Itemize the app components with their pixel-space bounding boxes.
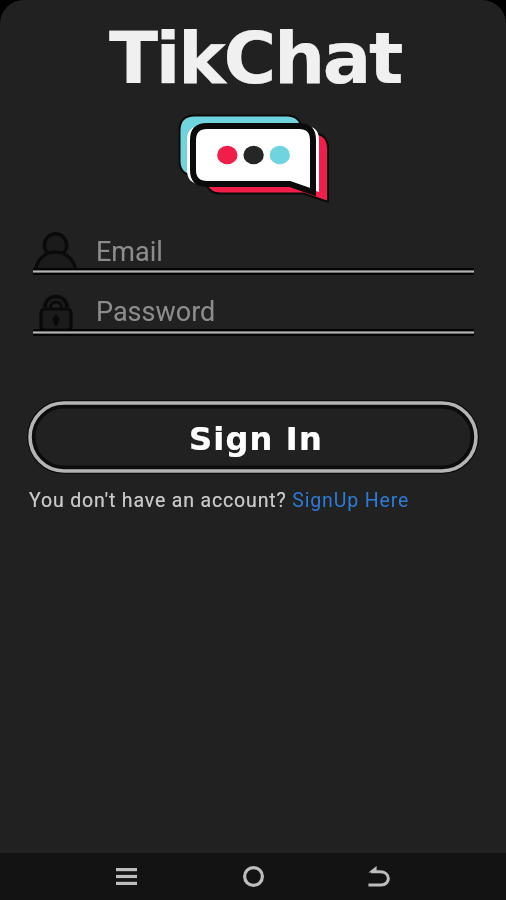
button[interactable]: You don't have an account? SignUp Here bbox=[29, 489, 410, 512]
button[interactable]: Sign In bbox=[27, 400, 479, 474]
staticText: Sign In bbox=[189, 420, 323, 457]
staticText: Password bbox=[96, 296, 216, 328]
button[interactable]: Email bbox=[33, 228, 474, 276]
button[interactable]: Home bbox=[229, 853, 277, 900]
staticText: You don't have an account? SignUp Here bbox=[29, 489, 410, 512]
button[interactable]: Password bbox=[33, 288, 474, 337]
button[interactable]: Back bbox=[355, 853, 403, 900]
staticText: TikChat bbox=[109, 16, 401, 100]
button[interactable]: Recent apps bbox=[102, 853, 150, 900]
staticText: Email bbox=[96, 236, 163, 268]
